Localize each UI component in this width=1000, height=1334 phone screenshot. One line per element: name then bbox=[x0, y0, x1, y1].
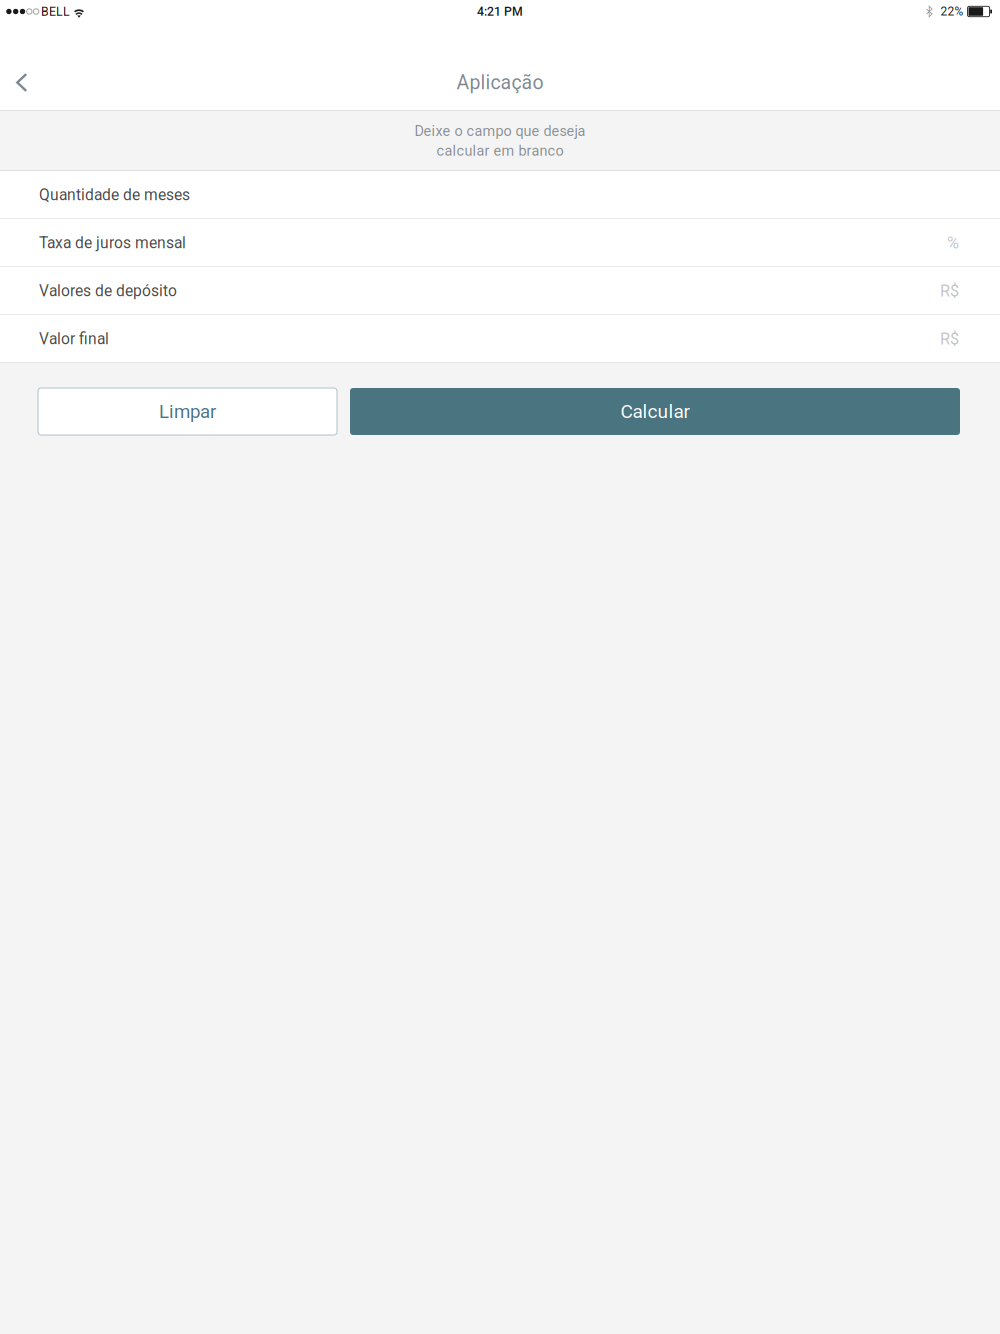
staticText: % bbox=[947, 233, 959, 253]
button[interactable]: Back bbox=[0, 27, 51, 107]
staticText: Valor final bbox=[39, 330, 109, 348]
button[interactable]: Quantidade de meses bbox=[0, 171, 1000, 219]
staticText: calcular em branco bbox=[436, 142, 563, 159]
button[interactable]: Taxa de juros mensal bbox=[0, 219, 1000, 267]
staticText: Taxa de juros mensal bbox=[39, 234, 186, 252]
staticText: R$ bbox=[940, 281, 959, 301]
staticText: Aplicação bbox=[456, 71, 543, 94]
staticText: BELL bbox=[41, 4, 70, 19]
button[interactable]: Limpar bbox=[38, 388, 337, 435]
button[interactable]: Calcular bbox=[350, 388, 960, 435]
button[interactable]: Valores de depósito bbox=[0, 267, 1000, 315]
staticText: Deixe o campo que deseja bbox=[414, 123, 585, 139]
staticText: Quantidade de meses bbox=[39, 186, 190, 204]
staticText: 4:21 PM bbox=[477, 4, 523, 19]
staticText: Calcular bbox=[620, 400, 689, 423]
button[interactable]: Valor final bbox=[0, 315, 1000, 363]
staticText: R$ bbox=[940, 329, 959, 349]
staticText: Limpar bbox=[159, 401, 216, 422]
staticText: 22% bbox=[941, 4, 964, 19]
staticText: Valores de depósito bbox=[39, 282, 177, 300]
